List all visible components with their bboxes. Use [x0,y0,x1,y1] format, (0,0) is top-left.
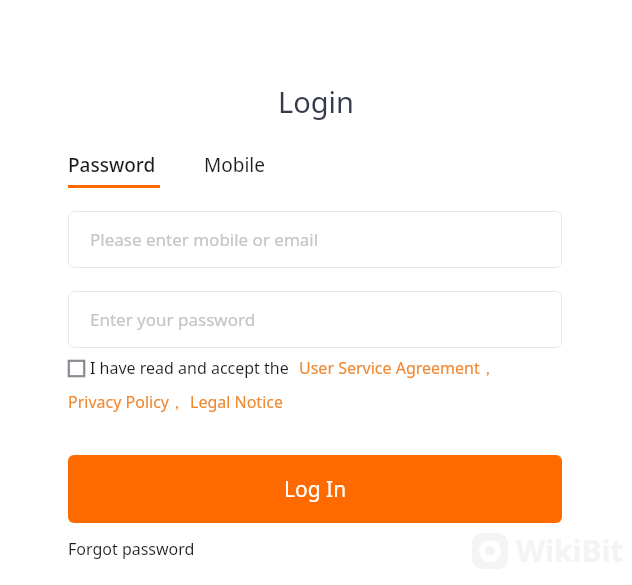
staticText: Password [68,152,156,178]
button[interactable]: Mobile [204,152,265,178]
button[interactable]: Forgot password [68,538,195,560]
staticText: Login [0,82,632,121]
button[interactable]: Legal Notice [190,391,283,413]
button[interactable]: Privacy Policy， [68,391,185,413]
staticText: I have read and accept the [90,357,289,379]
staticText: Please enter mobile or email [90,228,319,251]
button[interactable]: Log In [68,455,562,523]
staticText: Legal Notice [190,391,283,413]
staticText: Forgot password [68,538,195,560]
staticText: Log In [284,475,347,504]
staticText: User Service Agreement， [299,357,496,379]
staticText: Privacy Policy， [68,391,185,413]
staticText: Enter your password [90,308,256,331]
button[interactable]: User Service Agreement， [299,357,496,379]
button[interactable]: Enter your password [68,291,562,348]
button[interactable]: Please enter mobile or email [68,211,562,268]
staticText: WikiBit [516,530,624,571]
button[interactable]: Accept agreement checkbox [68,360,85,377]
button[interactable]: Password [68,152,160,188]
staticText: Mobile [204,152,265,178]
